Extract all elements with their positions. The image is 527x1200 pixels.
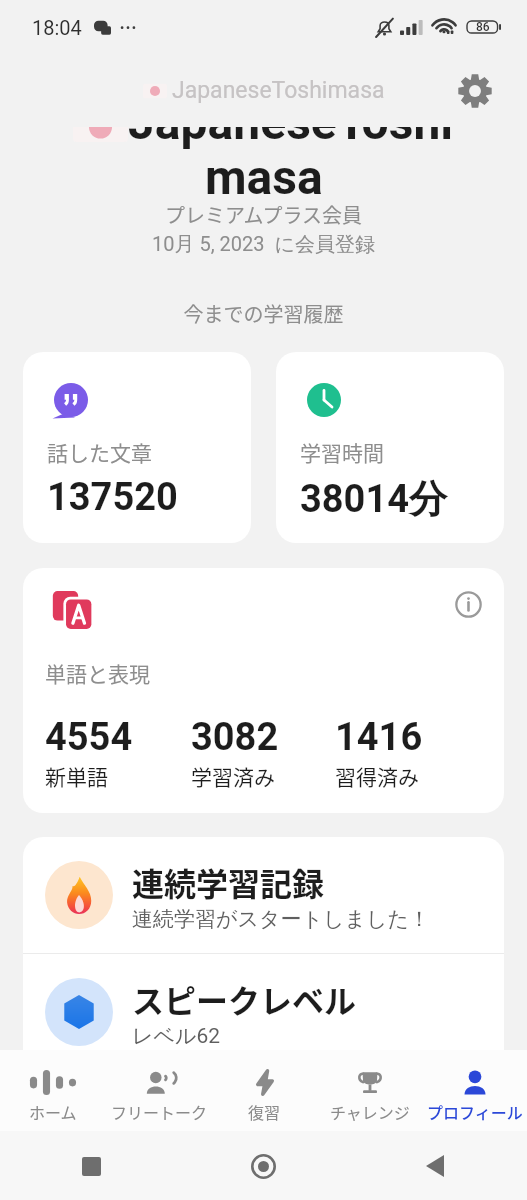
staticText: 連続学習がスタートしました！	[132, 906, 430, 932]
staticText: フリートーク	[111, 1100, 208, 1123]
staticText: ホーム	[29, 1100, 77, 1123]
staticText: 137520	[47, 475, 178, 520]
staticText: JapaneseToshi	[128, 94, 454, 150]
button[interactable]: 復習	[212, 1050, 317, 1131]
staticText: 学習時間	[300, 437, 384, 467]
button[interactable]: プロフィール	[422, 1050, 527, 1131]
button[interactable]: 連続学習記録	[23, 837, 504, 953]
staticText: プレミアムプラス会員	[0, 200, 527, 229]
staticText: レベル62	[132, 1023, 221, 1049]
button[interactable]: Settings	[452, 68, 498, 114]
staticText: 今までの学習履歴	[0, 299, 527, 328]
staticText: プロフィール	[427, 1100, 523, 1123]
staticText: 86	[476, 20, 490, 34]
button[interactable]: Info	[448, 584, 488, 624]
button[interactable]: 話した文章	[23, 352, 251, 543]
staticText: 10月 5, 2023 に会員登録	[0, 232, 527, 257]
button[interactable]: ホーム	[0, 1050, 106, 1131]
button[interactable]: フリートーク	[106, 1050, 212, 1131]
button[interactable]: 学習時間	[276, 352, 504, 543]
staticText: JapaneseToshimasa	[172, 77, 385, 104]
staticText: 4554	[45, 715, 133, 760]
staticText: チャレンジ	[330, 1100, 410, 1123]
staticText: 話した文章	[47, 437, 152, 467]
staticText: 38014分	[300, 475, 448, 523]
button[interactable]: Recents	[66, 1141, 116, 1191]
staticText: 連続学習記録	[132, 859, 325, 905]
staticText: 学習済み	[191, 761, 275, 791]
staticText: 習得済み	[335, 761, 419, 791]
button[interactable]: Home	[238, 1141, 288, 1191]
button[interactable]: 単語と表現	[23, 568, 504, 813]
button[interactable]: チャレンジ	[317, 1050, 422, 1131]
staticText: 復習	[248, 1100, 281, 1123]
staticText: 18:04	[32, 16, 82, 39]
button[interactable]: Back	[410, 1141, 460, 1191]
staticText: 1416	[335, 715, 423, 760]
staticText: 単語と表現	[45, 658, 150, 688]
button[interactable]: スピークレベル	[23, 954, 504, 1070]
staticText: スピークレベル	[132, 976, 357, 1022]
staticText: 3082	[191, 715, 279, 760]
staticText: 新単語	[45, 761, 108, 791]
staticText: masa	[205, 149, 323, 205]
